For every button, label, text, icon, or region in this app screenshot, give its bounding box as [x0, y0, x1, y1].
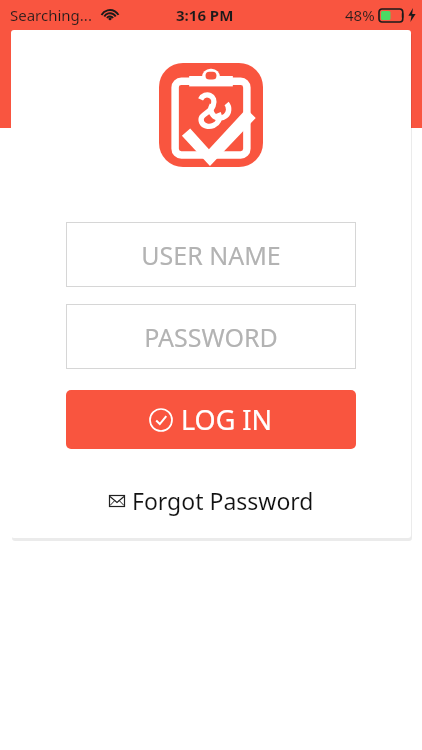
staticText: Forgot Password [132, 485, 314, 516]
button[interactable]: Email [103, 483, 320, 518]
staticText: USER NAME [141, 238, 281, 272]
button[interactable]: LOG IN [66, 390, 356, 449]
staticText: PASSWORD [144, 320, 278, 354]
staticText: LOG IN [181, 401, 273, 438]
staticText: Searching... [10, 5, 92, 25]
staticText: 3:16 PM [176, 5, 234, 25]
button[interactable]: USER NAME [66, 222, 356, 287]
button[interactable]: PASSWORD [66, 304, 356, 369]
staticText: 48% [345, 5, 375, 25]
other: Email [109, 495, 125, 507]
